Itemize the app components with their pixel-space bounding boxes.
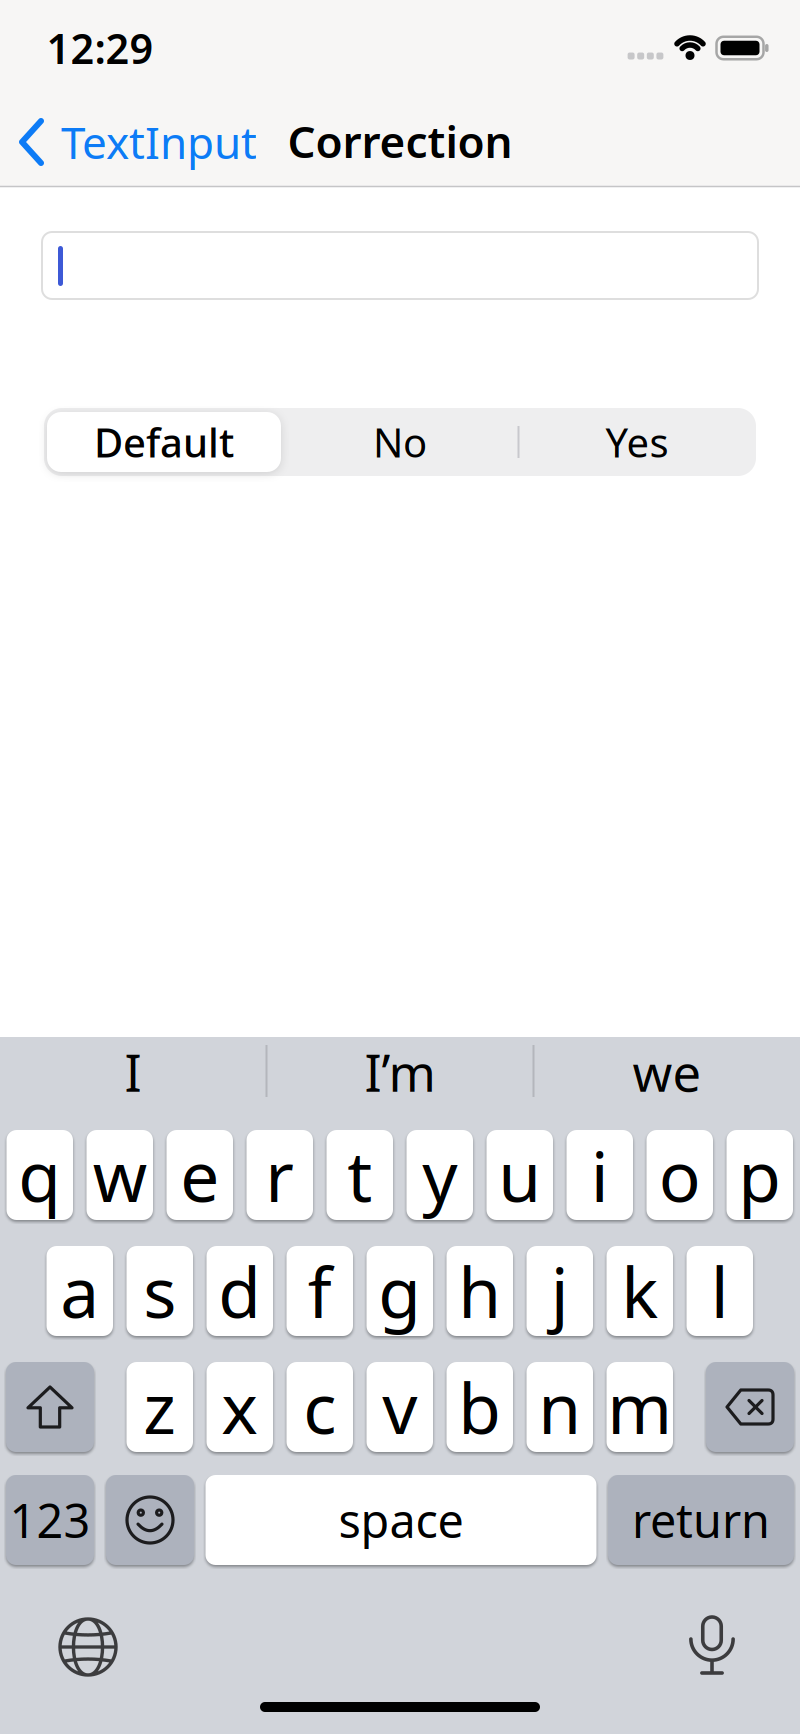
button[interactable]: x [206, 1362, 273, 1452]
button[interactable]: 123 [6, 1475, 94, 1565]
staticText: No [373, 415, 427, 468]
button[interactable]: r [246, 1130, 313, 1220]
button[interactable] [60, 1619, 116, 1675]
button[interactable]: n [526, 1362, 593, 1452]
staticText: I [124, 1038, 141, 1106]
button[interactable]: i [566, 1130, 633, 1220]
button[interactable]: No [285, 408, 515, 476]
button[interactable]: u [486, 1130, 553, 1220]
staticText: s [143, 1245, 176, 1337]
button[interactable]: m [606, 1362, 673, 1452]
button[interactable]: j [526, 1246, 593, 1336]
button[interactable]: y [406, 1130, 473, 1220]
staticText: Default [94, 415, 234, 468]
staticText: return [632, 1489, 770, 1551]
staticText: e [180, 1129, 219, 1221]
button[interactable]: space [205, 1475, 596, 1565]
button[interactable]: k [606, 1246, 673, 1336]
staticText: 12:29 [46, 21, 153, 75]
staticText: u [498, 1129, 541, 1221]
staticText: d [218, 1245, 261, 1337]
button[interactable] [690, 1617, 734, 1675]
button[interactable]: I’m [275, 1027, 525, 1117]
staticText: l [711, 1245, 729, 1337]
staticText: k [621, 1245, 658, 1337]
staticText: we [632, 1038, 701, 1106]
button[interactable]: z [126, 1362, 193, 1452]
staticText: y [422, 1129, 457, 1221]
button[interactable]: p [726, 1130, 793, 1220]
button[interactable]: a [46, 1246, 113, 1336]
staticText: c [303, 1361, 336, 1453]
staticText: f [308, 1245, 332, 1337]
staticText: i [591, 1129, 609, 1221]
button[interactable]: d [206, 1246, 273, 1336]
staticText: TextInput [61, 113, 257, 171]
button[interactable]: e [166, 1130, 233, 1220]
staticText: v [382, 1361, 417, 1453]
staticText: o [659, 1129, 701, 1221]
staticText: w [93, 1129, 147, 1221]
button[interactable] [42, 232, 758, 299]
staticText: m [607, 1361, 672, 1453]
button[interactable]: return [608, 1475, 794, 1565]
staticText: r [265, 1129, 294, 1221]
button[interactable]: v [366, 1362, 433, 1452]
button[interactable] [706, 1362, 794, 1452]
button[interactable]: b [446, 1362, 513, 1452]
staticText: h [458, 1245, 501, 1337]
staticText: I’m [364, 1038, 435, 1106]
staticText: a [60, 1245, 99, 1337]
button[interactable]: c [286, 1362, 353, 1452]
staticText: Yes [605, 415, 668, 468]
staticText: p [738, 1129, 781, 1221]
button[interactable] [44, 408, 756, 476]
button[interactable]: f [286, 1246, 353, 1336]
button[interactable]: g [366, 1246, 433, 1336]
staticText: q [18, 1129, 61, 1221]
button[interactable]: w [86, 1130, 153, 1220]
button[interactable]: Yes [522, 408, 752, 476]
staticText: n [538, 1361, 581, 1453]
staticText: t [347, 1129, 372, 1221]
staticText: 123 [9, 1489, 90, 1551]
staticText: b [458, 1361, 501, 1453]
button[interactable]: Default [47, 412, 281, 472]
staticText: Correction [287, 112, 512, 170]
staticText: z [143, 1361, 176, 1453]
button[interactable]: t [326, 1130, 393, 1220]
button[interactable]: s [126, 1246, 193, 1336]
button[interactable] [6, 1362, 94, 1452]
button[interactable]: q [6, 1130, 73, 1220]
button[interactable]: l [686, 1246, 753, 1336]
button[interactable]: h [446, 1246, 513, 1336]
staticText: j [551, 1245, 569, 1337]
staticText: x [221, 1361, 258, 1453]
button[interactable] [106, 1475, 194, 1565]
button[interactable]: TextInput [22, 112, 302, 172]
button[interactable]: o [646, 1130, 713, 1220]
staticText: space [338, 1489, 463, 1551]
button[interactable]: we [542, 1027, 792, 1117]
staticText: g [378, 1245, 421, 1337]
button[interactable]: I [8, 1027, 258, 1117]
